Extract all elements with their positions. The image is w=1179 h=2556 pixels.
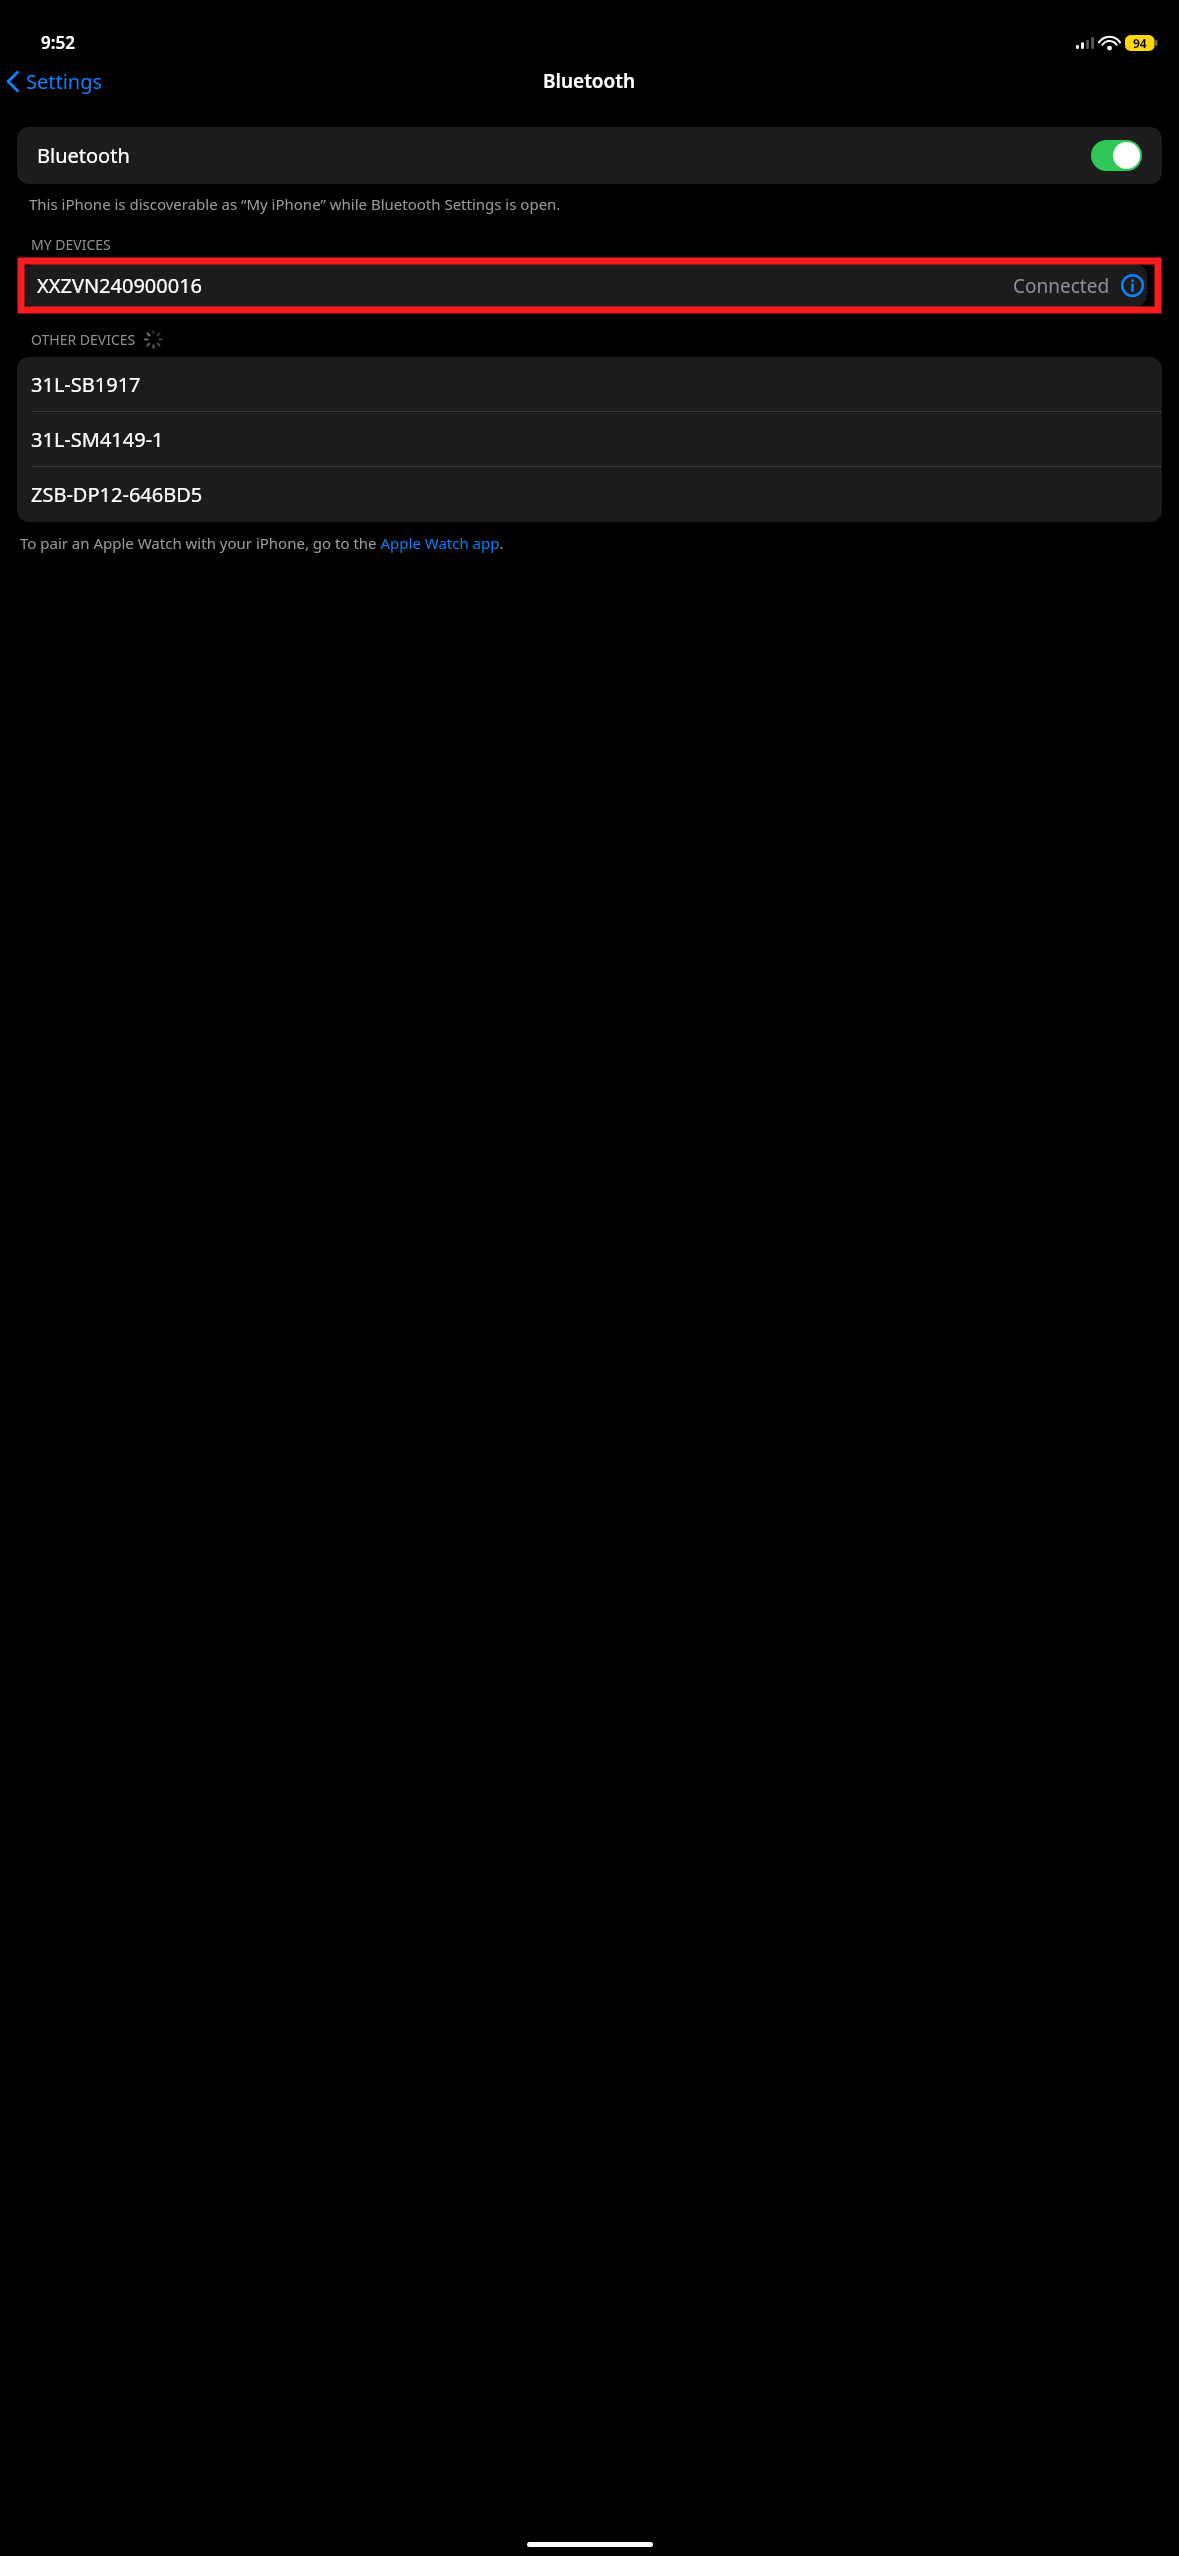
- button[interactable]: To pair an Apple Watch with your iPhone,…: [20, 533, 1068, 553]
- staticText: 31L-SM4149-1: [31, 426, 164, 453]
- staticText: Bluetooth: [37, 142, 130, 169]
- staticText: This iPhone is discoverable as “My iPhon…: [29, 194, 993, 214]
- button[interactable]: ZSB-DP12-646BD5: [17, 467, 1162, 522]
- button[interactable]: Bluetooth on: [1091, 140, 1142, 171]
- staticText: OTHER DEVICES: [31, 330, 136, 349]
- staticText: 94: [1133, 35, 1147, 51]
- staticText: Connected: [1013, 273, 1110, 299]
- staticText: ZSB-DP12-646BD5: [31, 481, 203, 508]
- button[interactable]: Bluetooth: [17, 127, 1162, 184]
- staticText: XXZVN240900016: [37, 272, 203, 299]
- button[interactable]: 31L-SM4149-1: [17, 412, 1162, 466]
- staticText: 31L-SB1917: [31, 371, 141, 398]
- staticText: 9:52: [41, 31, 75, 54]
- button[interactable]: Device info: [1121, 274, 1144, 297]
- staticText: Bluetooth: [543, 68, 636, 94]
- staticText: MY DEVICES: [31, 235, 111, 254]
- button[interactable]: XXZVN240900016: [21, 261, 1158, 310]
- button[interactable]: 31L-SB1917: [17, 357, 1162, 411]
- staticText: Settings: [26, 68, 103, 95]
- button[interactable]: Settings: [0, 62, 115, 101]
